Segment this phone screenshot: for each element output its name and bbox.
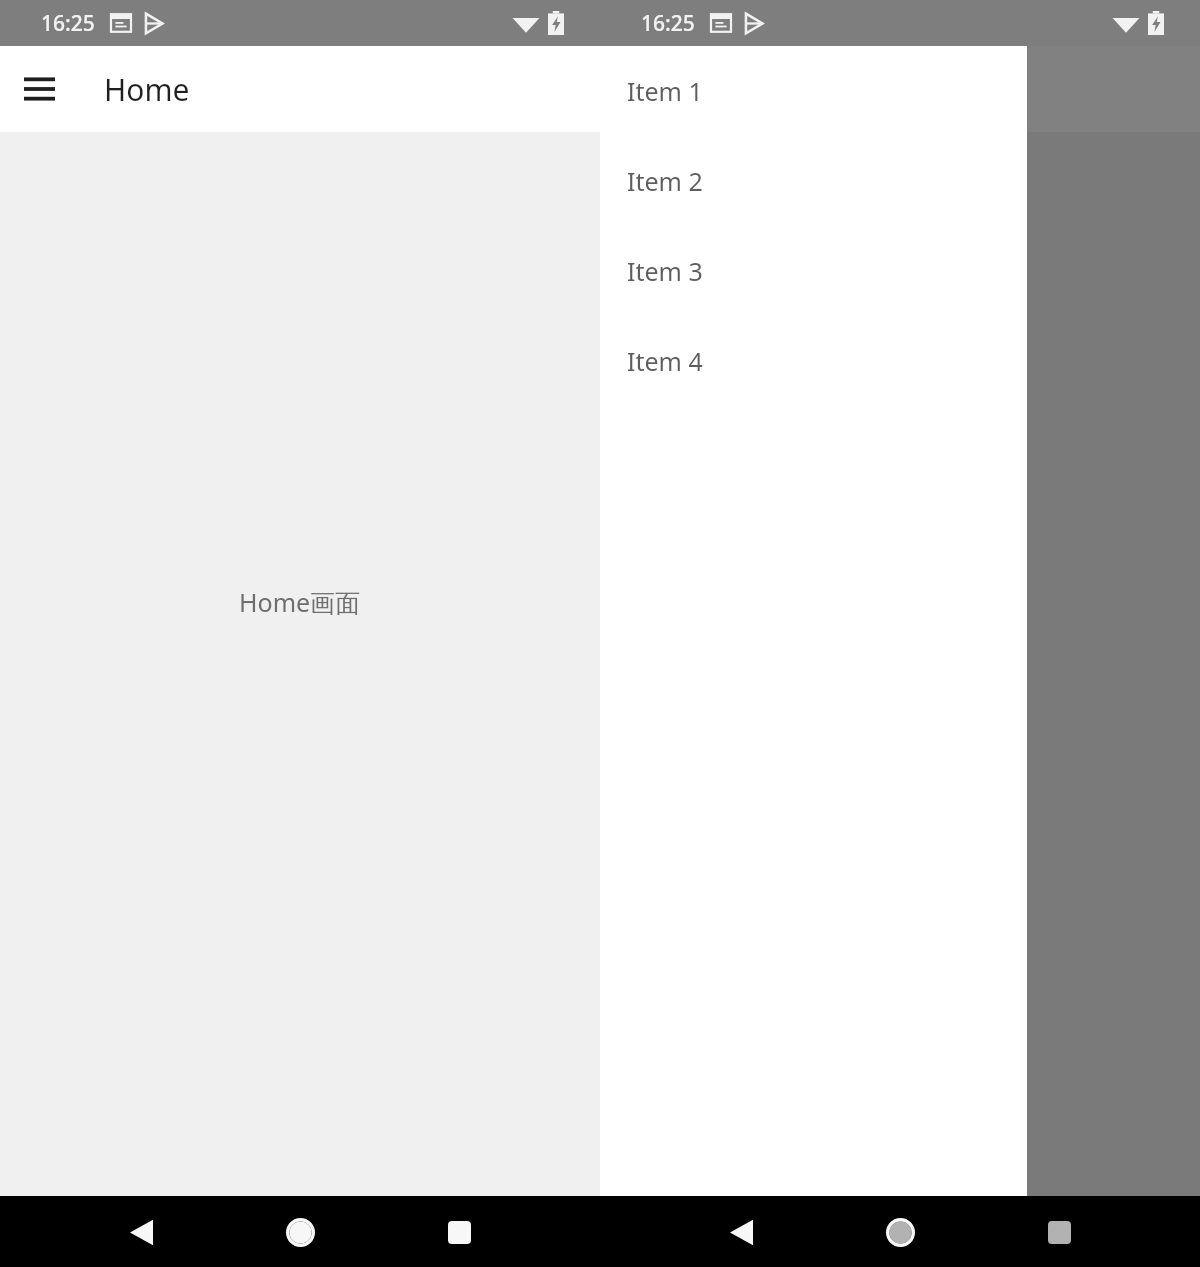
staticText: 16:25	[641, 9, 695, 38]
button[interactable]: Item 4	[600, 316, 1027, 406]
button[interactable]: Item 3	[600, 226, 1027, 316]
staticText: Item 4	[627, 344, 703, 378]
staticText: Item 2	[627, 164, 703, 198]
button[interactable]: Back	[112, 1203, 170, 1261]
staticText: Home	[104, 69, 190, 110]
staticText: Item 3	[627, 254, 703, 288]
staticText: Home画面	[239, 585, 361, 619]
button[interactable]: Item 1	[600, 46, 1027, 136]
button[interactable]: Recent apps	[1030, 1203, 1088, 1261]
button[interactable]: Open navigation menu	[10, 60, 68, 118]
staticText: Item 1	[627, 74, 703, 108]
button[interactable]: Home	[871, 1203, 929, 1261]
button[interactable]: Home	[271, 1203, 329, 1261]
staticText: 16:25	[41, 9, 95, 38]
button[interactable]: Back	[712, 1203, 770, 1261]
button[interactable]: Item 2	[600, 136, 1027, 226]
button[interactable]: Recent apps	[430, 1203, 488, 1261]
